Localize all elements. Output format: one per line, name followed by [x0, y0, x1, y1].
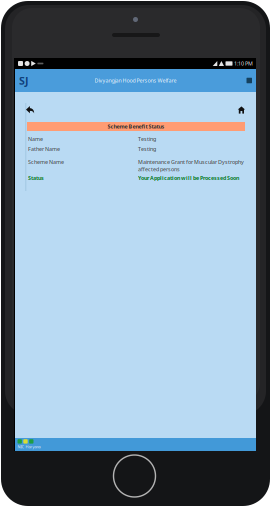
button[interactable]: Home [229, 104, 245, 116]
button[interactable]: Back [26, 104, 42, 116]
staticText: Testing [138, 145, 156, 153]
staticText: Name [28, 135, 43, 143]
staticText: 1:10 PM [234, 60, 253, 67]
staticText: Your Application will be Processed Soon [138, 174, 239, 182]
staticText: Testing [138, 135, 156, 143]
staticText: Maintenance Grant for Muscular Dystrophy… [138, 158, 244, 173]
staticText: Father Name [28, 145, 60, 153]
staticText: Status [28, 174, 44, 182]
staticText: NIC Haryana [17, 444, 40, 449]
staticText: Scheme Benefit Status [107, 123, 164, 130]
staticText: Scheme Name [28, 158, 64, 166]
staticText: SJ [19, 73, 29, 88]
staticText: Divyangjan Hood Persons Welfare [94, 77, 176, 84]
